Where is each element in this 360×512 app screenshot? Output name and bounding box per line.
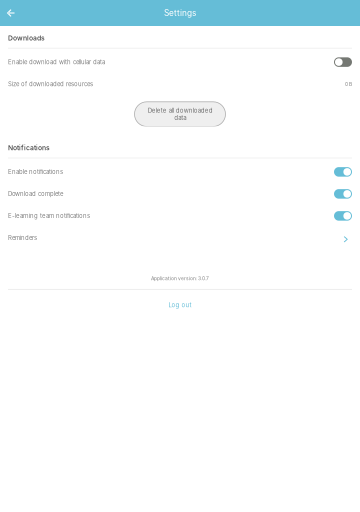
- staticText: Enable notifications: [8, 168, 63, 176]
- staticText: Log out: [168, 301, 191, 309]
- staticText: Delete all downloaded data: [147, 107, 212, 121]
- button[interactable]: Reminders: [0, 227, 360, 249]
- button[interactable]: Download complete: [334, 189, 352, 199]
- button[interactable]: Enable download with cellular data: [334, 57, 352, 67]
- staticText: Download complete: [8, 190, 63, 198]
- staticText: Size of downloaded resources: [8, 80, 93, 88]
- button[interactable]: Back: [0, 0, 21, 26]
- button[interactable]: Log out: [168, 301, 191, 309]
- staticText: 0 B: [345, 81, 352, 87]
- staticText: Notifications: [8, 144, 50, 152]
- button[interactable]: E-learning team notifications: [334, 211, 352, 221]
- staticText: Downloads: [8, 34, 45, 42]
- button[interactable]: Delete all downloaded data: [134, 102, 225, 126]
- staticText: Application version: 3.0.7: [151, 275, 209, 281]
- staticText: Enable download with cellular data: [8, 58, 105, 66]
- staticText: E-learning team notifications: [8, 212, 90, 220]
- button[interactable]: Enable notifications: [334, 167, 352, 177]
- staticText: Settings: [164, 8, 196, 18]
- staticText: Reminders: [8, 234, 37, 242]
